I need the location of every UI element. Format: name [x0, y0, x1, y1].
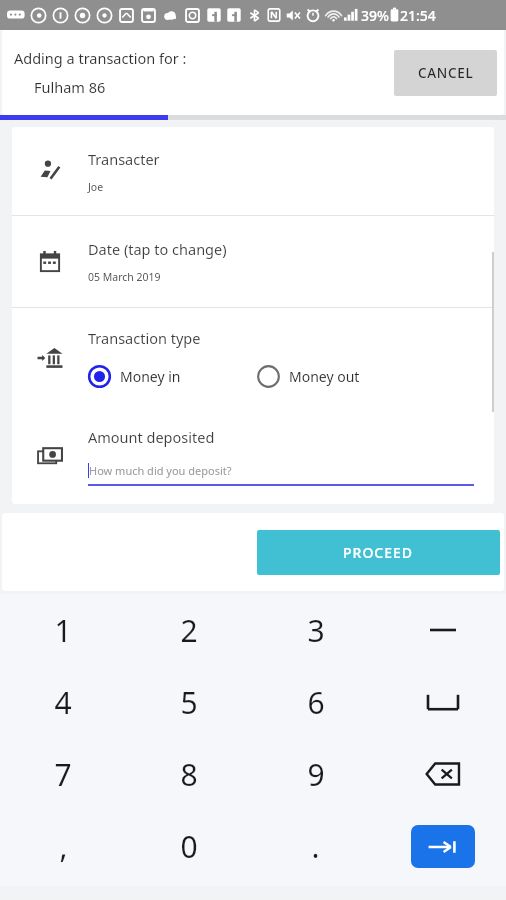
staticText: Joe [88, 180, 104, 194]
staticText: Adding a transaction for : [14, 48, 187, 68]
staticText: Amount deposited [88, 427, 215, 447]
staticText: 3 [307, 610, 325, 651]
button[interactable]: PROCEED [257, 530, 500, 575]
staticText: Money out [289, 367, 360, 386]
button[interactable]: 7 [0, 738, 126, 810]
button[interactable]: Money out [257, 365, 360, 388]
staticText: . [311, 826, 320, 867]
staticText: , [59, 826, 68, 867]
button[interactable]: 9 [252, 738, 379, 810]
button[interactable]: 3 [252, 594, 379, 666]
staticText: How much did you deposit? [89, 463, 232, 478]
staticText: PROCEED [343, 543, 414, 562]
staticText: 4 [54, 682, 72, 723]
button[interactable]: 1 [0, 594, 126, 666]
staticText: 8 [180, 754, 198, 795]
button[interactable]: , [0, 810, 126, 882]
staticText: 05 March 2019 [88, 270, 161, 284]
button[interactable]: 5 [126, 666, 252, 738]
button[interactable]: Enter [379, 810, 506, 882]
staticText: 6 [307, 682, 325, 723]
staticText: CANCEL [418, 64, 474, 82]
button[interactable]: Backspace [379, 738, 506, 810]
staticText: Date (tap to change) [88, 239, 227, 259]
button[interactable]: Money in [88, 365, 181, 388]
staticText: 0 [180, 826, 198, 867]
button[interactable]: 4 [0, 666, 126, 738]
button[interactable]: Transacter [12, 127, 494, 215]
staticText: Transacter [88, 149, 160, 169]
button[interactable]: . [252, 810, 379, 882]
staticText: 1 [54, 610, 72, 651]
staticText: Money in [120, 367, 181, 386]
button[interactable]: How much did you deposit? [88, 463, 474, 486]
button[interactable]: 6 [252, 666, 379, 738]
button[interactable]: CANCEL [394, 50, 497, 96]
staticText: 9 [307, 754, 325, 795]
button[interactable]: 0 [126, 810, 252, 882]
button[interactable]: 8 [126, 738, 252, 810]
button[interactable]: Space [379, 666, 506, 738]
staticText: Transaction type [88, 328, 201, 348]
staticText: 39% [361, 6, 389, 25]
staticText: 21:54 [400, 6, 436, 25]
staticText: 5 [180, 682, 198, 723]
button[interactable]: Date (tap to change) [12, 216, 494, 307]
staticText: 7 [54, 754, 72, 795]
button[interactable]: 2 [126, 594, 252, 666]
staticText: Fulham 86 [34, 77, 106, 97]
staticText: 2 [180, 610, 198, 651]
button[interactable] [379, 594, 506, 666]
